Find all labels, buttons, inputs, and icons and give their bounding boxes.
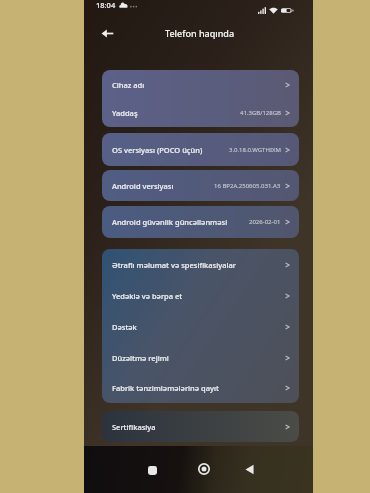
button[interactable]: Ətraflı məlumat və spesifikasiyalar	[102, 249, 299, 280]
button[interactable]: OS versiyası (POCO üçün)	[102, 133, 299, 166]
staticText: OS versiyası (POCO üçün)	[112, 145, 203, 155]
staticText: Ətraflı məlumat və spesifikasiyalar	[112, 260, 237, 270]
button[interactable]: Home	[195, 460, 213, 478]
staticText: Yedəklə və bərpa et	[112, 291, 183, 301]
button[interactable]: Android versiyası	[102, 170, 299, 201]
button[interactable]: Cihaz adı	[102, 70, 299, 99]
button[interactable]: Sertifikasiya	[102, 411, 299, 442]
button[interactable]: Android güvənlik güncəllənməsi	[102, 206, 299, 238]
button[interactable]: Sertifikasiya	[102, 411, 299, 442]
staticText: Telefon haqında	[165, 27, 235, 39]
staticText: Android versiyası	[112, 181, 174, 191]
staticText: Dəstək	[112, 322, 137, 332]
button[interactable]: Back	[97, 23, 117, 43]
button[interactable]: Dəstək	[102, 311, 299, 342]
staticText: Fabrik tənzimləmələrinə qayıt	[112, 383, 219, 393]
button[interactable]: OS versiyası (POCO üçün)	[102, 133, 299, 166]
staticText: Düzəltmə rejimi	[112, 353, 169, 363]
staticText: Yaddaş	[112, 108, 138, 118]
staticText: 16 BP2A.250605.031.A3	[214, 182, 281, 190]
button[interactable]: Yaddaş	[102, 99, 299, 127]
staticText: Android güvənlik güncəllənməsi	[112, 217, 228, 227]
button[interactable]: Fabrik tənzimləmələrinə qayıt	[102, 373, 299, 403]
staticText: 3.0.18.0.WGTHIXM	[229, 146, 281, 154]
staticText: Cihaz adı	[112, 80, 145, 90]
button[interactable]: Ətraflı məlumat və spesifikasiyalar	[102, 249, 299, 403]
staticText: 2026-02-01	[249, 218, 281, 226]
button[interactable]: Android güvənlik güncəllənməsi	[102, 206, 299, 238]
button[interactable]: Cihaz adı	[102, 70, 299, 127]
button[interactable]: Recent apps	[144, 462, 160, 478]
button[interactable]: Android versiyası	[102, 170, 299, 201]
staticText: 41.3GB/128GB	[240, 109, 281, 117]
button[interactable]: Yedəklə və bərpa et	[102, 280, 299, 311]
button[interactable]: Düzəltmə rejimi	[102, 342, 299, 373]
staticText: 18:04	[96, 0, 116, 10]
staticText: Sertifikasiya	[112, 422, 156, 432]
button[interactable]: Back	[240, 460, 258, 478]
